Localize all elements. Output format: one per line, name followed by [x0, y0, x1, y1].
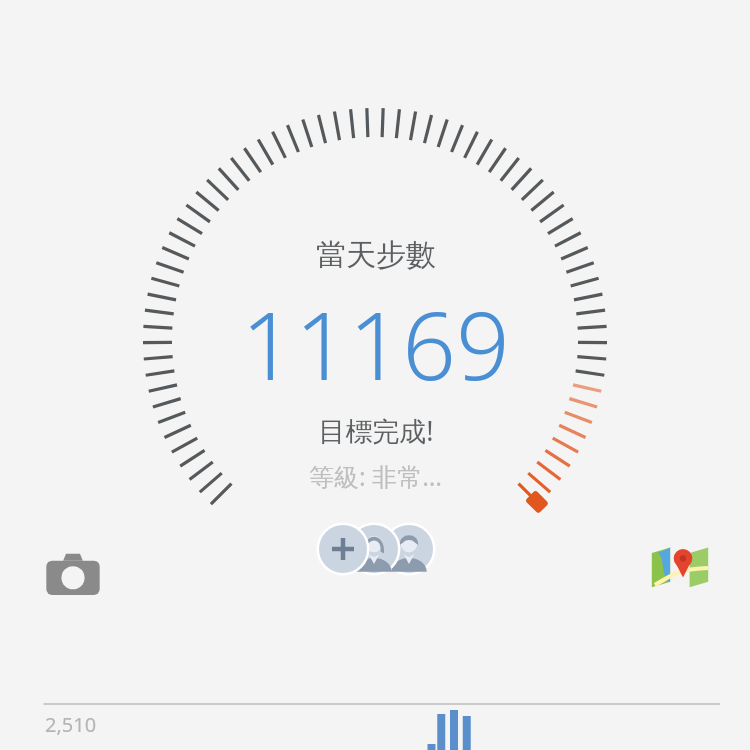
button[interactable]: Add friends [318, 524, 434, 574]
button[interactable]: Camera [44, 545, 102, 603]
button[interactable]: Maps [650, 538, 710, 598]
staticText: 11169 [241, 280, 510, 408]
staticText: 等級: 非常… [309, 459, 442, 493]
staticText: 2,510 [45, 711, 97, 738]
staticText: 目標完成! [318, 412, 434, 449]
staticText: 當天步數 [316, 236, 436, 274]
